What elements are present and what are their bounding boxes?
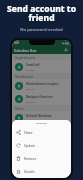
staticText: Default Workbox: [26, 114, 52, 118]
staticText: Update: [24, 144, 36, 148]
staticText: Share: [24, 131, 33, 135]
staticText: Send account to friend: [2, 3, 81, 24]
button[interactable]: Update: [12, 139, 71, 152]
button[interactable]: Backport Services: [12, 92, 71, 105]
staticText: It's fine: [26, 68, 35, 71]
staticText: sign in >: [26, 119, 36, 122]
staticText: Others: [15, 107, 24, 110]
staticText: Work Accounts: [15, 75, 33, 78]
button[interactable]: Default Workbox: [12, 111, 71, 124]
staticText: Workstation Longbox: [26, 82, 59, 86]
staticText: Details: [24, 170, 35, 174]
button[interactable]: Share: [12, 126, 71, 139]
button[interactable]: Remove: [12, 152, 71, 165]
staticText: Email ok!: [26, 63, 40, 67]
staticText: Solution Box: [14, 48, 37, 53]
staticText: sign in >: [26, 100, 36, 103]
staticText: No password needed: [0, 27, 83, 33]
staticText: 9:41: [14, 41, 20, 45]
button[interactable]: Workstation Longbox: [12, 79, 71, 92]
staticText: Remove: [24, 157, 37, 161]
staticText: Google Accounts: [15, 56, 36, 59]
staticText: Backport Services: [26, 95, 53, 99]
staticText: sign in >: [26, 87, 36, 90]
button[interactable]: Details: [12, 165, 71, 178]
button[interactable]: Email ok!: [12, 60, 71, 73]
button[interactable]: Add account: [63, 47, 69, 53]
